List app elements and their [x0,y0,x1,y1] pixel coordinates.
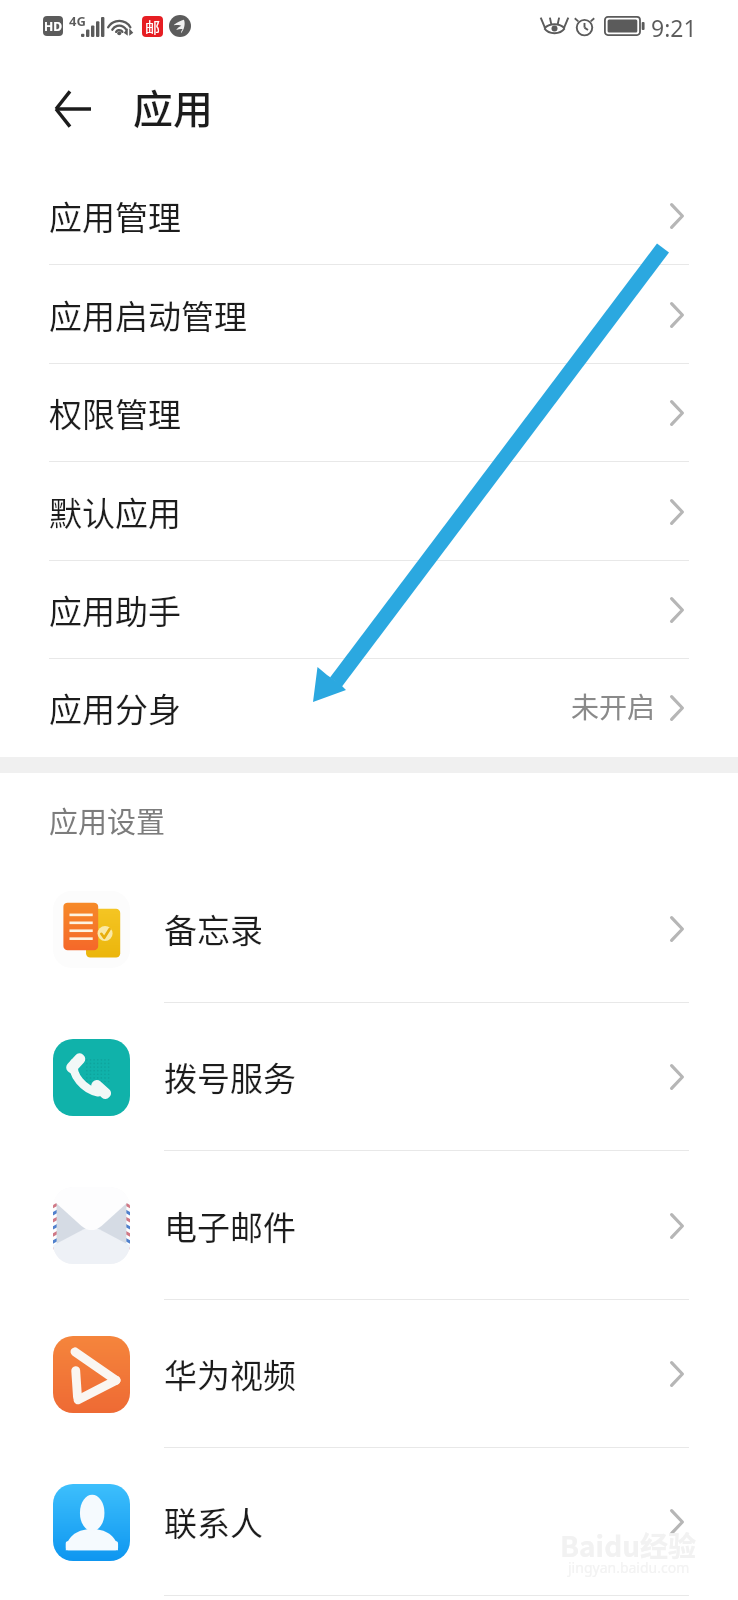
staticText: jingyan.baidu.com [568,1558,690,1577]
staticText: 电子邮件 [164,1202,296,1250]
staticText: 拨号服务 [164,1053,296,1101]
button[interactable]: 华为视频 [0,1300,738,1448]
staticText: 应用管理 [49,192,181,240]
staticText: 4G [69,12,86,30]
staticText: 9:21 [651,12,697,43]
button[interactable]: 默认应用 [0,462,738,561]
staticText: 权限管理 [49,389,181,437]
staticText: 未开启 [571,686,656,727]
button[interactable]: 拨号服务 [0,1003,738,1151]
button[interactable]: 备忘录 [0,855,738,1003]
button[interactable]: Back [36,52,110,166]
staticText: 默认应用 [49,488,181,536]
button[interactable]: 联系人 [0,1448,738,1596]
button[interactable]: 应用管理 [0,166,738,265]
staticText: 应用设置 [49,799,166,841]
button[interactable]: 电子邮件 [0,1151,738,1300]
staticText: 应用 [133,78,213,136]
button[interactable]: 应用助手 [0,561,738,659]
staticText: 应用分身 [49,684,181,732]
staticText: HD [44,18,62,34]
staticText: 华为视频 [164,1350,296,1398]
button[interactable]: 应用启动管理 [0,265,738,364]
staticText: 应用助手 [49,586,181,634]
staticText: 邮 [145,16,161,37]
staticText: Baidu经验 [560,1525,696,1566]
button[interactable]: 权限管理 [0,364,738,462]
staticText: 联系人 [164,1498,263,1546]
button[interactable]: 应用分身 [0,659,738,757]
staticText: 应用启动管理 [49,291,247,339]
staticText: 备忘录 [164,905,263,953]
